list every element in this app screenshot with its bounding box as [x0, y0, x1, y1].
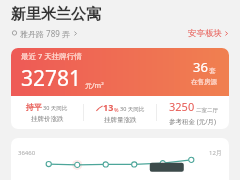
staticText: 雅丹路 789 弄: [20, 28, 70, 39]
staticText: 挂牌量涨跌: [104, 116, 137, 124]
button[interactable]: 最近 7 天挂牌行情: [11, 48, 229, 129]
staticText: 套: [209, 67, 216, 75]
button[interactable]: 36460: [11, 138, 229, 180]
button[interactable]: 雅丹路 789 弄: [11, 28, 78, 39]
button[interactable]: 持平: [11, 102, 83, 123]
staticText: 安亭板块: [188, 28, 222, 39]
staticText: 12月: [209, 149, 222, 157]
staticText: 30 天同比: [43, 104, 68, 112]
button[interactable]: 13: [84, 101, 156, 124]
staticText: 挂牌价涨跌: [31, 115, 64, 123]
staticText: 3250: [169, 99, 195, 114]
staticText: 在售房源: [191, 78, 217, 86]
button[interactable]: 3250: [157, 99, 229, 126]
button[interactable]: 安亭板块: [188, 28, 229, 39]
staticText: 持平: [26, 102, 42, 112]
staticText: %: [114, 106, 119, 113]
staticText: 新里米兰公寓: [11, 5, 101, 24]
staticText: 元/m²: [85, 81, 104, 91]
staticText: 36460: [18, 149, 36, 157]
staticText: 36: [193, 58, 208, 76]
staticText: 32781: [21, 64, 82, 93]
staticText: 参考租金 (元/月): [169, 117, 217, 126]
staticText: 二室二厅: [196, 107, 218, 114]
staticText: 30 天同比: [120, 105, 145, 113]
staticText: 最近 7 天挂牌行情: [21, 51, 82, 61]
staticText: 13: [103, 101, 114, 113]
